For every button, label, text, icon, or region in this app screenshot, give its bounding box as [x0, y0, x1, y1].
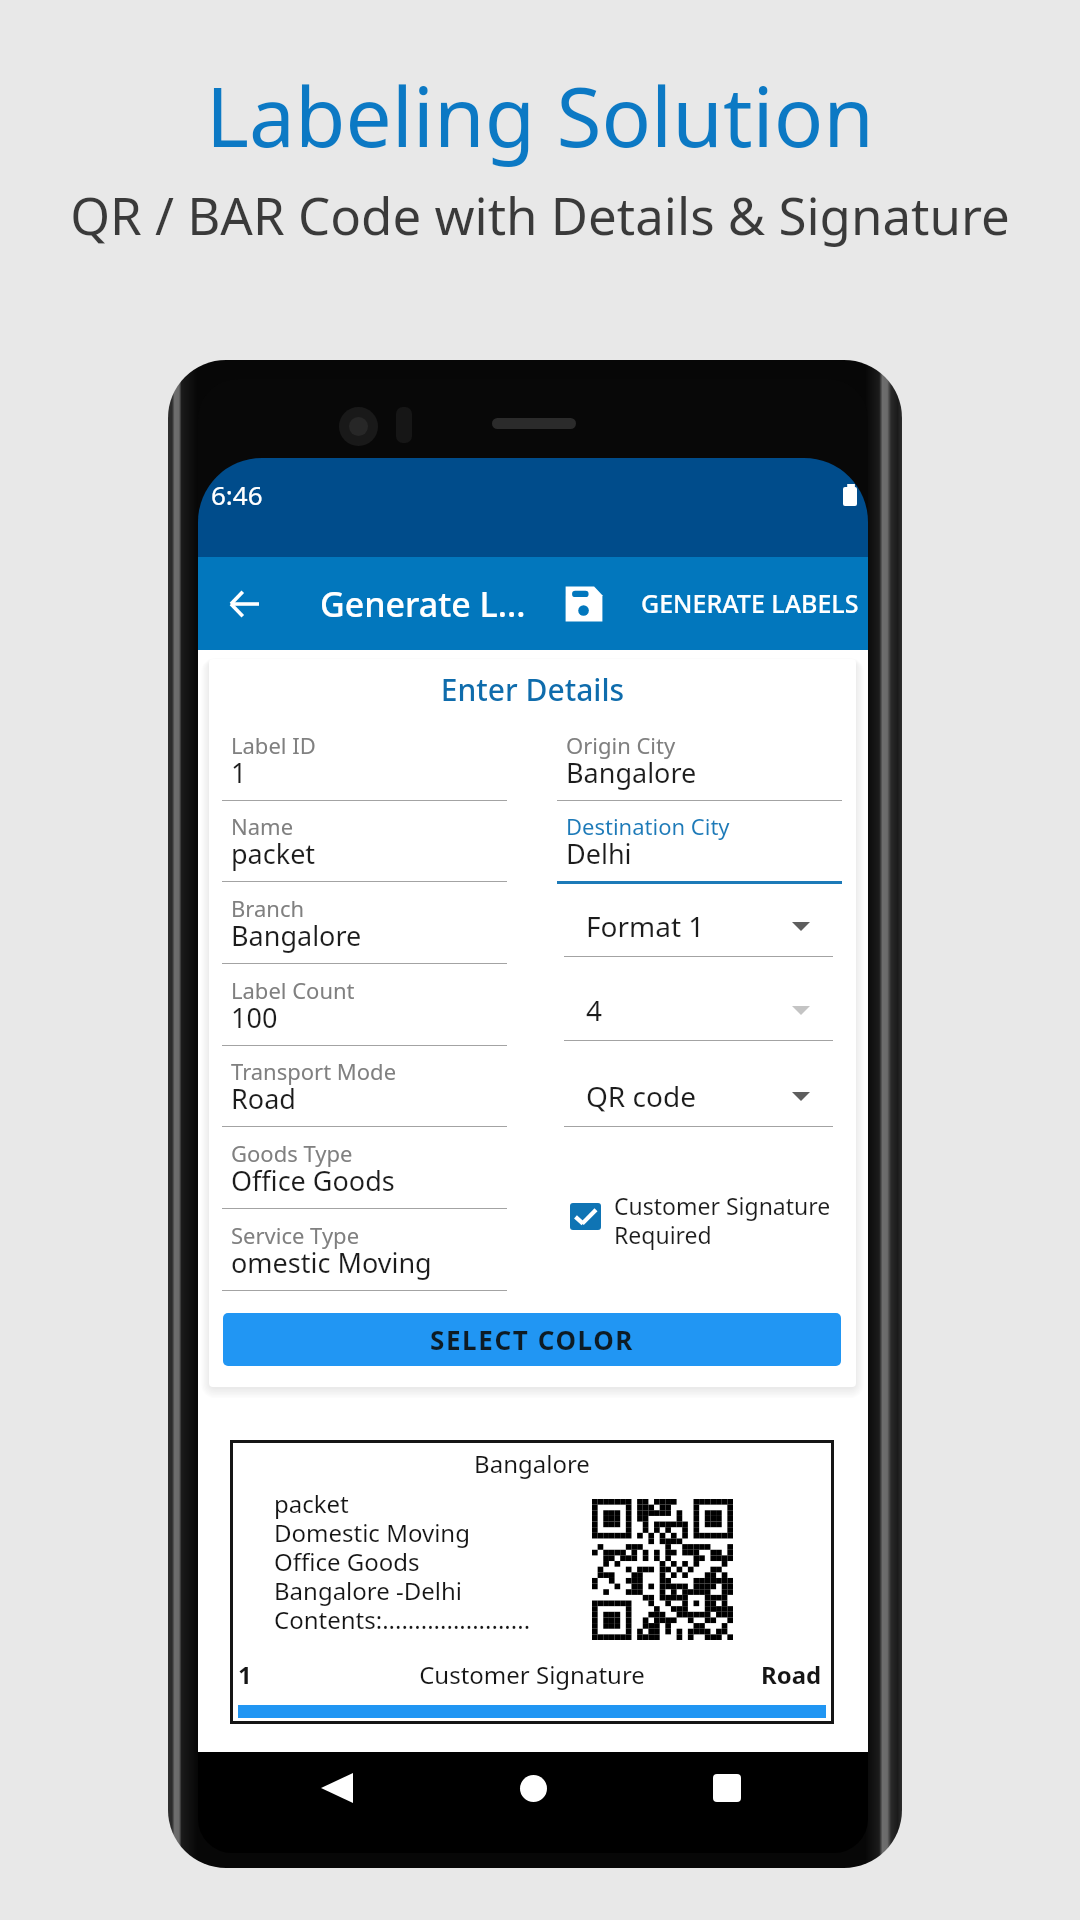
button[interactable]: Branch [222, 889, 507, 967]
staticText: Origin City [566, 730, 676, 760]
staticText: packet [231, 835, 316, 872]
staticText: Destination City [566, 811, 730, 841]
staticText: SELECT COLOR [430, 1322, 635, 1357]
button[interactable]: Name [222, 807, 507, 885]
staticText: 6:46 [211, 477, 263, 512]
staticText: GENERATE LABELS [641, 586, 859, 620]
button[interactable]: Label ID [222, 726, 507, 804]
staticText: Transport Mode [231, 1056, 397, 1086]
button[interactable]: Service Type [222, 1216, 507, 1294]
staticText: Name [231, 811, 294, 841]
button[interactable]: Back [209, 557, 279, 650]
button[interactable]: Customer Signature Required [568, 1198, 854, 1258]
staticText: Bangalore [230, 1447, 834, 1480]
button[interactable]: QR code [564, 1070, 833, 1126]
staticText: Bangalore [566, 754, 697, 791]
button[interactable]: Home [502, 1757, 564, 1819]
button[interactable]: Back [306, 1757, 368, 1819]
staticText: Goods Type [231, 1138, 353, 1168]
staticText: Enter Details [209, 669, 856, 710]
staticText: 4 [586, 991, 603, 1029]
button[interactable]: Label Count [222, 971, 507, 1049]
button[interactable]: Goods Type [222, 1134, 507, 1212]
button[interactable]: Origin City [557, 726, 842, 804]
button[interactable]: Format 1 [564, 900, 833, 956]
staticText: Office Goods [231, 1162, 395, 1199]
staticText: Label ID [231, 730, 316, 760]
button[interactable]: Transport Mode [222, 1052, 507, 1130]
staticText: 100 [231, 999, 278, 1036]
button[interactable]: Destination City [557, 807, 842, 885]
staticText: Generate L... [320, 581, 526, 627]
staticText: Customer Signature Required [614, 1190, 831, 1250]
staticText: 1 [231, 754, 247, 791]
button[interactable]: 4 [564, 984, 833, 1040]
staticText: Service Type [231, 1220, 360, 1250]
button[interactable]: SELECT COLOR [223, 1313, 841, 1366]
staticText: Bangalore [231, 917, 362, 954]
button[interactable]: GENERATE LABELS [628, 557, 858, 650]
staticText: Delhi [566, 835, 632, 872]
staticText: Customer Signature [230, 1658, 834, 1691]
staticText: Label Count [231, 975, 355, 1005]
staticText: QR code [586, 1077, 696, 1115]
staticText: Road [231, 1080, 296, 1117]
button[interactable]: Save [550, 557, 618, 650]
staticText: 1 [238, 1658, 252, 1691]
staticText: packet Domestic Moving Office Goods Bang… [274, 1487, 531, 1636]
staticText: QR / BAR Code with Details & Signature [0, 180, 1080, 249]
staticText: Road [761, 1658, 822, 1691]
staticText: Branch [231, 893, 305, 923]
staticText: Format 1 [586, 907, 705, 945]
button[interactable]: Recents [696, 1757, 758, 1819]
staticText: Labeling Solution [0, 59, 1080, 171]
staticText: omestic Moving [231, 1244, 432, 1281]
